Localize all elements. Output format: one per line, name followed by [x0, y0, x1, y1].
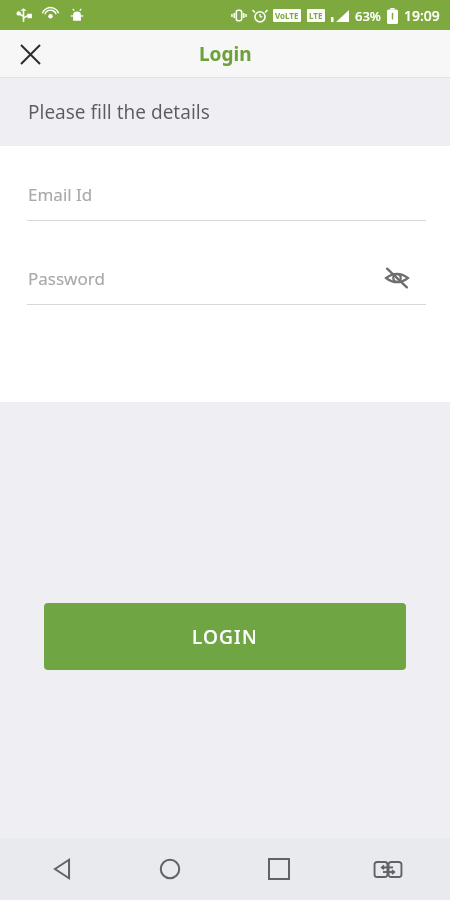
staticText: Please fill the details	[28, 99, 210, 125]
staticText: VoLTE	[275, 10, 299, 21]
staticText: 63%	[355, 7, 381, 25]
button[interactable]: Toggle password visibility	[380, 261, 414, 295]
staticText: Password	[28, 267, 105, 290]
button[interactable]: Recent apps	[224, 838, 333, 900]
button[interactable]: Home	[116, 838, 224, 900]
button[interactable]: Switch apps	[333, 838, 442, 900]
button[interactable]: Back	[8, 838, 116, 900]
staticText: LTE	[309, 10, 323, 21]
staticText: LOGIN	[192, 624, 258, 650]
button[interactable]: Close	[12, 36, 48, 72]
staticText: 19:09	[404, 6, 440, 25]
button[interactable]: Password	[0, 252, 450, 304]
staticText: Email Id	[28, 183, 93, 206]
button[interactable]: LOGIN	[44, 603, 406, 670]
button[interactable]: Email Id	[0, 168, 450, 220]
staticText: Login	[199, 41, 252, 67]
